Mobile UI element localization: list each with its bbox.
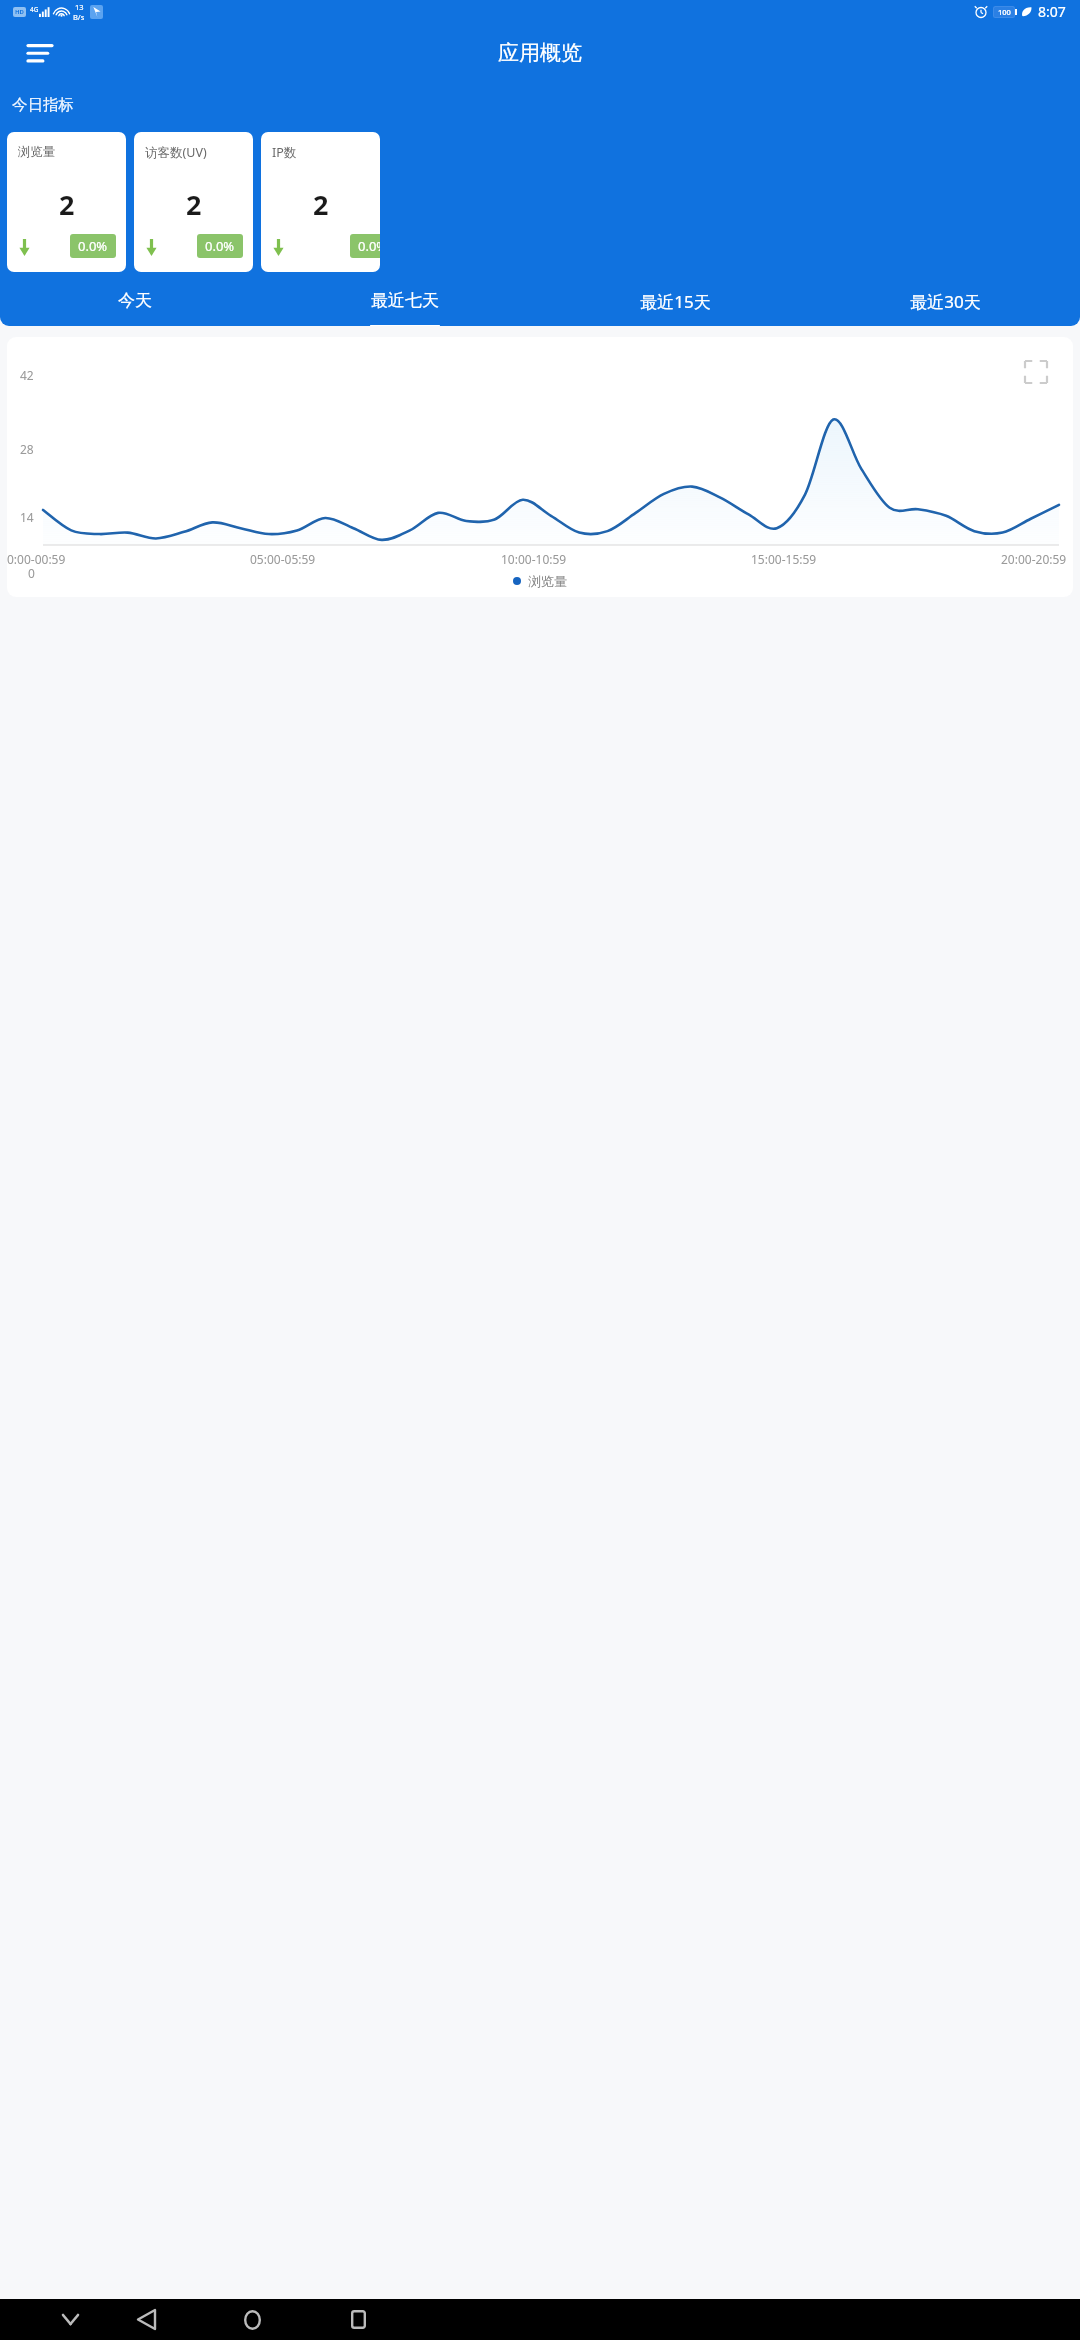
staticText: 100 (998, 7, 1011, 17)
staticText: 今天 (118, 290, 152, 311)
staticText: 28 (20, 441, 34, 457)
staticText: 0.0% (78, 237, 108, 255)
staticText: B/s (73, 12, 85, 22)
staticText: HD (15, 8, 24, 16)
button[interactable]: 最近30天 (810, 281, 1080, 326)
button[interactable]: 最近15天 (540, 281, 810, 326)
button[interactable]: 访客数(UV) (134, 132, 253, 272)
staticText: 2 (59, 186, 75, 223)
staticText: 0.0% (205, 237, 235, 255)
staticText: 最近七天 (371, 290, 439, 311)
button[interactable]: Hide keyboard (44, 2299, 96, 2340)
staticText: 0.0% (358, 237, 380, 255)
staticText: 2 (186, 186, 202, 223)
button[interactable]: 浏览量 (7, 132, 126, 272)
staticText: 访客数(UV) (145, 144, 207, 161)
staticText: 最近30天 (910, 290, 981, 313)
button[interactable]: Fullscreen (1025, 361, 1047, 383)
staticText: 15:00-15:59 (751, 551, 817, 567)
staticText: 8:07 (1038, 2, 1066, 21)
staticText: 13 (75, 2, 84, 12)
button[interactable]: IP数 (261, 132, 380, 272)
staticText: 2 (313, 186, 329, 223)
staticText: 应用概览 (498, 40, 582, 66)
staticText: 浏览量 (528, 573, 567, 589)
staticText: 0 (28, 565, 35, 581)
staticText: 20:00-20:59 (1001, 551, 1067, 567)
staticText: 今日指标 (12, 95, 74, 115)
staticText: IP数 (272, 144, 297, 161)
staticText: 42 (20, 367, 34, 383)
staticText: 14 (20, 509, 34, 525)
staticText: 浏览量 (18, 144, 56, 160)
button[interactable]: Recents (332, 2299, 384, 2340)
staticText: 05:00-05:59 (250, 551, 316, 567)
button[interactable]: Home (226, 2299, 278, 2340)
button[interactable]: 最近七天 (270, 281, 540, 326)
button[interactable]: 今天 (0, 281, 270, 326)
staticText: 4G (30, 5, 39, 14)
staticText: 10:00-10:59 (501, 551, 567, 567)
staticText: 0:00-00:59 (7, 551, 66, 567)
button[interactable]: Back (120, 2299, 172, 2340)
button[interactable]: Menu (20, 33, 60, 73)
staticText: 最近15天 (640, 290, 711, 313)
